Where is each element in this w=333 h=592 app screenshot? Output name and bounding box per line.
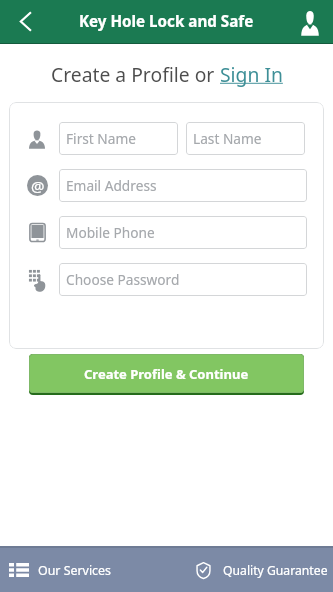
staticText: Last Name: [193, 129, 262, 148]
button[interactable]: First Name: [59, 122, 178, 155]
button[interactable]: Create Profile & Continue: [29, 354, 304, 395]
staticText: First Name: [66, 129, 136, 148]
button[interactable]: Sign In: [220, 61, 283, 87]
staticText: Mobile Phone: [66, 223, 155, 242]
staticText: Key Hole Lock and Safe: [79, 11, 254, 32]
staticText: Choose Password: [66, 270, 180, 289]
staticText: Quality Guarantee: [223, 562, 328, 579]
button[interactable]: Profile: [289, 0, 333, 43]
button[interactable]: Email Address: [59, 169, 307, 202]
staticText: Sign In: [220, 61, 283, 87]
staticText: @: [31, 176, 45, 196]
button[interactable]: Back: [0, 0, 48, 43]
button[interactable]: Quality Guarantee: [166, 548, 333, 592]
button[interactable]: Choose Password: [59, 263, 307, 296]
staticText: Create Profile & Continue: [84, 365, 249, 383]
button[interactable]: Our Services: [0, 548, 166, 592]
button[interactable]: Mobile Phone: [59, 216, 307, 249]
staticText: Our Services: [38, 562, 111, 579]
staticText: Create a Profile or: [51, 61, 220, 87]
button[interactable]: Last Name: [186, 122, 305, 155]
staticText: Email Address: [66, 176, 157, 195]
